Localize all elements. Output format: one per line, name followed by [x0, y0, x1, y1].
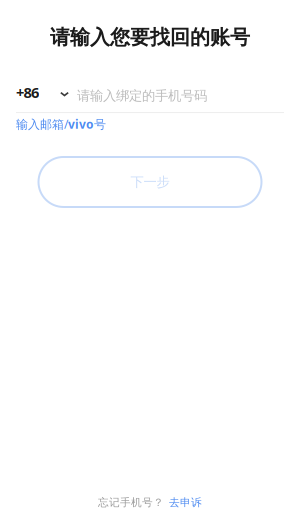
staticText: 请输入绑定的手机号码	[77, 88, 207, 104]
staticText: +86	[16, 83, 39, 102]
button[interactable]: 下一步	[38, 157, 261, 207]
button[interactable]: 去申诉	[169, 496, 202, 509]
button[interactable]: 请输入绑定的手机号码	[69, 81, 284, 104]
button[interactable]: 输入邮箱/vivo号	[0, 113, 122, 137]
button[interactable]: 国家区号 +86	[16, 79, 69, 106]
staticText: 下一步	[130, 174, 169, 190]
staticText: 忘记手机号？	[98, 496, 164, 509]
staticText: 输入邮箱/vivo号	[16, 116, 106, 132]
staticText: 去申诉	[169, 496, 202, 509]
staticText: 请输入您要找回的账号	[50, 25, 250, 50]
